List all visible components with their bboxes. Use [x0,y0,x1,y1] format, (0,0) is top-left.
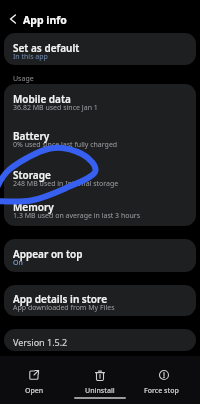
button[interactable]: Set as default [4,33,196,65]
staticText: Set as default [13,41,80,55]
staticText: Uninstall [85,386,115,396]
staticText: In this app [13,52,48,62]
button[interactable]: Version 1.5.2 [4,329,196,351]
staticText: Usage [13,74,34,84]
button[interactable]: Mobile data [4,84,196,226]
staticText: 1.3 MB used on average in last 3 hours [13,211,141,221]
button[interactable]: Uninstall [78,364,122,400]
staticText: Open [25,386,44,396]
staticText: Battery [13,129,50,143]
staticText: 36.82 MB used since Jan 1 [13,103,98,113]
button[interactable]: App details in store [4,285,196,316]
staticText: Version 1.5.2 [13,336,68,348]
button[interactable]: Appear on top [4,239,196,272]
staticText: Appear on top [13,247,83,261]
staticText: Storage [13,168,51,182]
staticText: App downloaded from My Files [13,303,115,313]
staticText: 0% used since last fully charged [13,140,118,150]
staticText: Force stop [144,386,179,396]
staticText: App details in store [13,292,108,306]
button[interactable]: Open [14,364,54,400]
staticText: 248 MB used in Internal storage [13,179,119,189]
button[interactable]: Force stop [142,364,186,400]
staticText: App info [23,13,67,27]
staticText: Mobile data [13,92,71,106]
staticText: On [13,258,23,268]
button[interactable]: App info [0,0,200,30]
staticText: Memory [13,200,54,214]
